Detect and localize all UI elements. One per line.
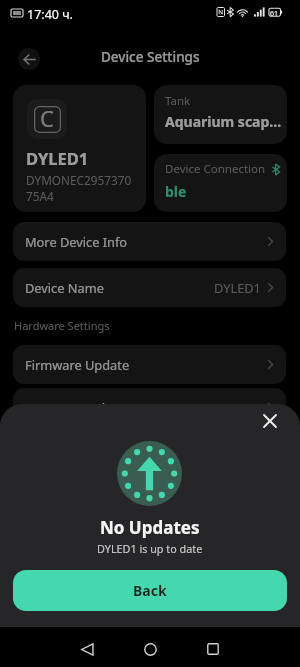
button[interactable]: Tank xyxy=(154,85,287,144)
staticText: Firmware Update xyxy=(25,356,130,373)
staticText: ble xyxy=(165,182,187,201)
staticText: Device Connection xyxy=(165,161,266,177)
staticText: 61 xyxy=(270,9,279,19)
staticText: More Device Info xyxy=(25,233,128,250)
button[interactable]: Back xyxy=(67,629,107,667)
staticText: Device Name xyxy=(25,279,104,296)
button[interactable]: Close xyxy=(256,407,284,435)
staticText: DYMONEC2957370 75A4 xyxy=(26,172,132,205)
button[interactable]: Firmware Update xyxy=(13,345,286,384)
staticText: DYLED1 xyxy=(26,147,89,169)
staticText: Back xyxy=(133,581,167,600)
staticText: DYLED1 is up to date xyxy=(97,541,203,556)
button[interactable]: Recents xyxy=(193,629,233,667)
staticText: No Updates xyxy=(100,516,200,539)
button[interactable]: More Device Info xyxy=(13,222,286,261)
button[interactable]: Device Name xyxy=(13,268,286,307)
button[interactable]: Back xyxy=(18,48,40,70)
staticText: Aquarium scap… xyxy=(165,112,282,131)
staticText: 17:40 ч. xyxy=(27,6,73,23)
button[interactable]: C xyxy=(13,85,146,212)
staticText: Set Password xyxy=(25,399,106,416)
button[interactable]: Home xyxy=(130,629,170,667)
staticText: Device Settings xyxy=(101,48,200,66)
button[interactable]: Back xyxy=(13,570,287,611)
staticText: Hardware Settings xyxy=(14,318,110,333)
staticText: C xyxy=(40,103,54,133)
staticText: Tank xyxy=(165,93,191,109)
button[interactable]: Set Password xyxy=(13,388,286,427)
button[interactable]: Device Connection xyxy=(154,154,287,212)
staticText: DYLED1 xyxy=(214,279,261,296)
